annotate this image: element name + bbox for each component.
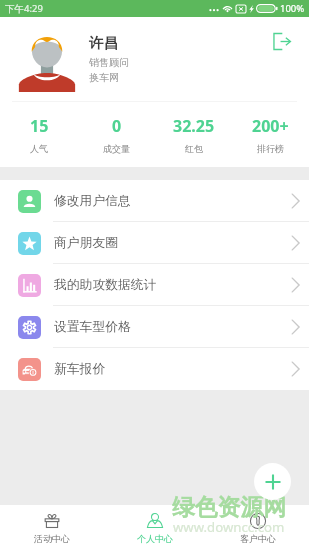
button[interactable]: 200+ [232, 102, 309, 167]
staticText: 设置车型价格 [54, 319, 131, 335]
button[interactable]: 15 [0, 102, 78, 167]
staticText: 销售顾问 [89, 56, 129, 69]
staticText: 红包 [185, 143, 203, 154]
staticText: 新车报价 [54, 361, 106, 377]
staticText: 0 [112, 115, 122, 137]
staticText: www.downcc.com [173, 518, 285, 536]
button[interactable]: 设置车型价格 [0, 306, 309, 348]
staticText: 客户中心 [240, 533, 276, 544]
staticText: 200+ [252, 115, 289, 137]
button[interactable]: 个人中心 [103, 505, 206, 550]
button[interactable]: 修改用户信息 [0, 180, 309, 222]
button[interactable]: Avatar [18, 32, 76, 92]
staticText: 换车网 [89, 71, 119, 84]
staticText: 人气 [30, 143, 48, 154]
staticText: 15 [30, 115, 49, 137]
button[interactable]: 32.25 [155, 102, 232, 167]
staticText: 100% [280, 2, 305, 15]
staticText: 活动中心 [34, 533, 70, 544]
button[interactable]: 活动中心 [0, 505, 103, 550]
button[interactable]: Logout [267, 27, 295, 55]
button[interactable]: 我的助攻数据统计 [0, 264, 309, 306]
button[interactable]: 客户中心 [206, 505, 309, 550]
staticText: 排行榜 [257, 143, 284, 154]
staticText: 成交量 [103, 143, 130, 154]
staticText: 我的助攻数据统计 [54, 277, 157, 293]
staticText: 绿色资源网 [172, 493, 286, 522]
staticText: 修改用户信息 [54, 193, 131, 209]
staticText: 32.25 [173, 115, 215, 137]
button[interactable]: 商户朋友圈 [0, 222, 309, 264]
button[interactable]: 0 [78, 102, 155, 167]
staticText: 商户朋友圈 [54, 235, 118, 251]
staticText: 个人中心 [137, 533, 173, 544]
button[interactable]: Add [254, 463, 291, 500]
staticText: 许昌 [89, 34, 118, 52]
button[interactable]: 新车报价 [0, 348, 309, 390]
staticText: 下午4:29 [5, 2, 43, 15]
